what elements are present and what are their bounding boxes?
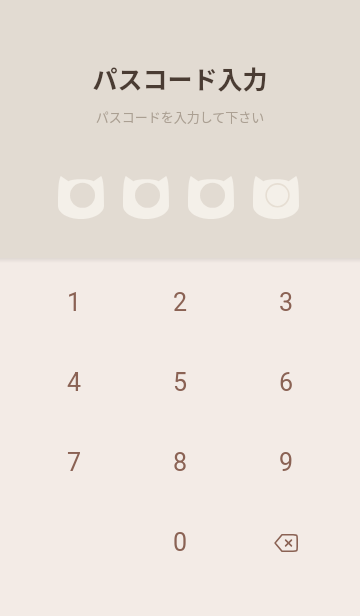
staticText: 7 — [67, 448, 82, 477]
staticText: 9 — [279, 448, 294, 477]
staticText: 2 — [173, 288, 188, 317]
staticText: 0 — [173, 528, 188, 557]
button[interactable]: 2 — [127, 262, 233, 342]
staticText: 4 — [67, 368, 82, 397]
staticText: 1 — [67, 288, 82, 317]
button[interactable]: 4 — [21, 342, 127, 422]
button[interactable]: 3 — [233, 262, 339, 342]
staticText: パスコード入力 — [0, 60, 360, 96]
button[interactable]: 6 — [233, 342, 339, 422]
staticText: 6 — [279, 368, 294, 397]
button[interactable]: 0 — [127, 502, 233, 582]
button[interactable]: 9 — [233, 422, 339, 502]
button[interactable]: 1 — [21, 262, 127, 342]
other: Delete — [274, 534, 298, 552]
button[interactable]: 8 — [127, 422, 233, 502]
button[interactable]: Delete — [233, 502, 339, 582]
staticText: パスコードを入力して下さい — [0, 107, 360, 126]
staticText: 8 — [173, 448, 188, 477]
button[interactable]: 5 — [127, 342, 233, 422]
staticText: 3 — [279, 288, 294, 317]
button[interactable]: 7 — [21, 422, 127, 502]
staticText: 5 — [173, 368, 188, 397]
